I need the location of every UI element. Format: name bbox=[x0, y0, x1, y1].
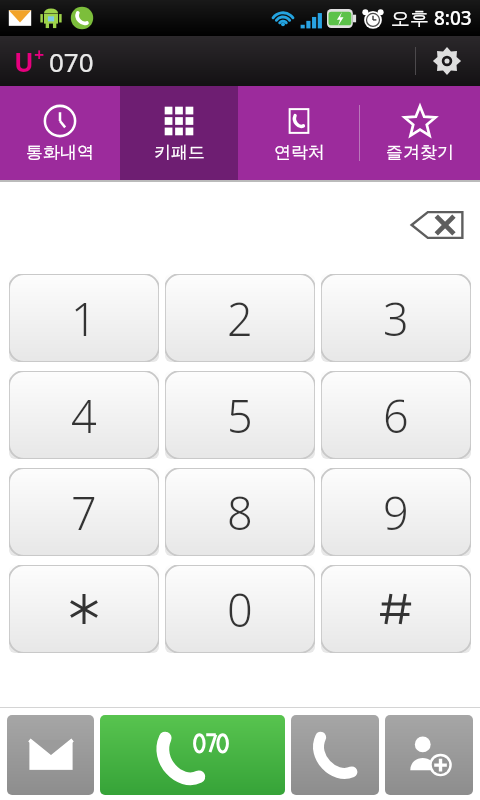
button[interactable]: 2 bbox=[165, 274, 315, 362]
button[interactable]: 1 bbox=[9, 274, 159, 362]
button[interactable]: Call 070 bbox=[100, 715, 285, 795]
staticText: U bbox=[14, 44, 34, 79]
staticText: 1 bbox=[71, 288, 97, 349]
staticText: 5 bbox=[227, 385, 253, 446]
staticText: 9 bbox=[383, 482, 409, 543]
button[interactable]: 즐겨찾기 bbox=[360, 86, 480, 180]
button[interactable]: Add contact bbox=[385, 715, 473, 795]
button[interactable]: Call bbox=[291, 715, 379, 795]
staticText: 2 bbox=[227, 288, 253, 349]
button[interactable]: 4 bbox=[9, 371, 159, 459]
staticText: 3 bbox=[383, 288, 409, 349]
button[interactable]: Settings bbox=[424, 38, 470, 84]
staticText: 키패드 bbox=[154, 142, 205, 163]
button[interactable]: 연락처 bbox=[238, 86, 360, 180]
button[interactable]: 0 bbox=[165, 565, 315, 653]
button[interactable]: 9 bbox=[321, 468, 471, 556]
staticText: 0 bbox=[227, 579, 253, 640]
staticText: 즐겨찾기 bbox=[386, 142, 454, 163]
staticText: 6 bbox=[383, 385, 409, 446]
staticText: 070 bbox=[49, 44, 94, 79]
button[interactable]: 5 bbox=[165, 371, 315, 459]
button[interactable] bbox=[321, 565, 471, 653]
staticText: 오후 8:03 bbox=[391, 5, 472, 31]
staticText: 7 bbox=[71, 482, 97, 543]
button[interactable]: 8 bbox=[165, 468, 315, 556]
button[interactable]: Backspace bbox=[404, 202, 470, 248]
staticText: 4 bbox=[71, 385, 97, 446]
button[interactable]: 7 bbox=[9, 468, 159, 556]
staticText: 8 bbox=[227, 482, 253, 543]
staticText: 연락처 bbox=[274, 142, 325, 163]
staticText: + bbox=[34, 42, 45, 67]
button[interactable]: 6 bbox=[321, 371, 471, 459]
button[interactable]: 키패드 bbox=[120, 86, 238, 180]
staticText: 통화내역 bbox=[26, 142, 94, 163]
button[interactable] bbox=[9, 565, 159, 653]
button[interactable]: 통화내역 bbox=[0, 86, 120, 180]
button[interactable]: Message bbox=[7, 715, 94, 795]
button[interactable]: 3 bbox=[321, 274, 471, 362]
